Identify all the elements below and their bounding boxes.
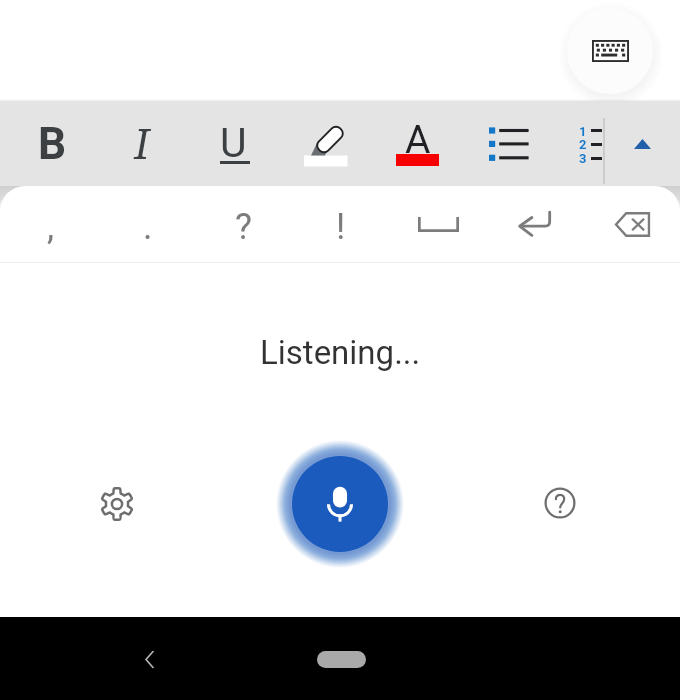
button[interactable]: ! bbox=[293, 186, 389, 262]
button[interactable]: Help bbox=[526, 469, 594, 537]
button[interactable]: Collapse toolbar bbox=[612, 102, 672, 186]
button[interactable]: Settings bbox=[83, 470, 151, 538]
staticText: 2 bbox=[579, 137, 587, 152]
staticText: B bbox=[38, 118, 67, 170]
button[interactable]: . bbox=[100, 186, 196, 262]
button[interactable]: Numbered list bbox=[556, 102, 604, 186]
button[interactable]: Underline bbox=[188, 102, 278, 186]
button[interactable]: Space bbox=[390, 186, 486, 262]
button[interactable]: , bbox=[3, 186, 99, 262]
button[interactable]: Home bbox=[280, 617, 400, 700]
button[interactable]: Enter bbox=[486, 186, 582, 262]
staticText: I bbox=[134, 119, 151, 169]
button[interactable]: Text colour bbox=[373, 102, 463, 186]
staticText: ! bbox=[336, 206, 346, 248]
staticText: . bbox=[143, 206, 153, 248]
button[interactable]: Back bbox=[120, 617, 182, 700]
staticText: , bbox=[47, 206, 55, 248]
staticText: Listening... bbox=[260, 333, 421, 372]
button[interactable]: Bold bbox=[7, 102, 97, 186]
staticText: A bbox=[405, 117, 431, 163]
button[interactable]: Bulleted list bbox=[464, 102, 554, 186]
staticText: 1 bbox=[579, 124, 587, 139]
staticText: U bbox=[220, 119, 247, 167]
button[interactable]: Backspace bbox=[584, 186, 680, 262]
button[interactable]: Italic bbox=[97, 102, 187, 186]
staticText: 3 bbox=[579, 151, 587, 166]
button[interactable]: Stop voice input bbox=[272, 436, 408, 572]
button[interactable]: Highlight bbox=[280, 102, 370, 186]
button[interactable]: ? bbox=[196, 186, 292, 262]
staticText: ? bbox=[235, 206, 253, 248]
button[interactable]: Switch to keyboard bbox=[567, 8, 653, 94]
